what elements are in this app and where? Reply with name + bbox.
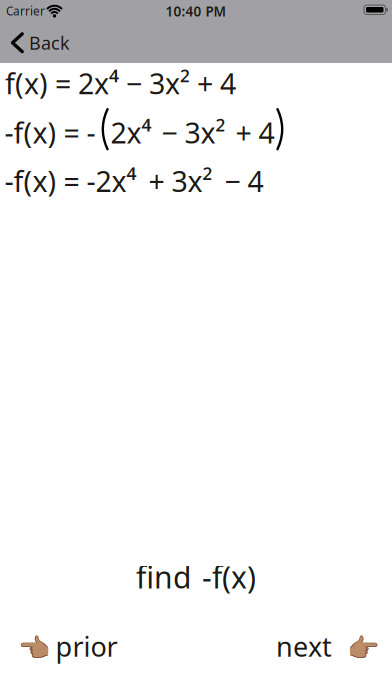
staticText: 2x⁴ − 3x² + 4 xyxy=(110,113,274,152)
staticText: Back xyxy=(29,30,70,55)
button[interactable]: 👈🏽 xyxy=(18,628,117,665)
staticText: f(x) = 2x⁴ − 3x² + 4 xyxy=(5,64,236,103)
staticText: find -f(x) xyxy=(136,556,256,597)
staticText: 👈🏽 xyxy=(18,633,50,663)
staticText: -f(x) = - xyxy=(4,113,100,152)
button[interactable]: Back xyxy=(10,30,70,55)
staticText: next xyxy=(276,628,332,665)
button[interactable]: next xyxy=(276,628,379,665)
staticText: 10:40 PM xyxy=(165,2,226,20)
staticText: Carrier xyxy=(6,3,45,19)
staticText: -f(x) = -2x⁴ + 3x² − 4 xyxy=(4,162,263,200)
staticText: 👉🏽 xyxy=(347,633,379,663)
staticText: prior xyxy=(55,628,117,665)
